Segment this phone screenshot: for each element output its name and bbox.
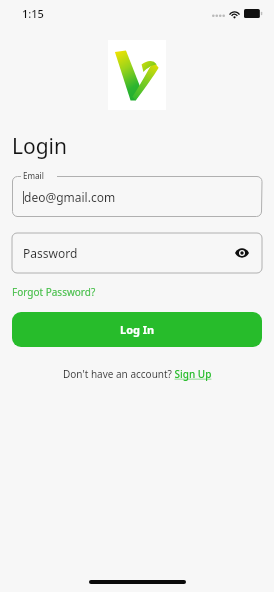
button[interactable]: Password: [12, 233, 262, 273]
staticText: Log In: [120, 322, 155, 337]
staticText: Email: [23, 170, 44, 181]
staticText: Login: [12, 132, 68, 161]
button[interactable]: Show password: [232, 243, 252, 263]
staticText: deo@gmail.com: [24, 189, 116, 205]
button[interactable]: Log In: [12, 312, 262, 347]
staticText: Password: [23, 245, 78, 261]
button[interactable]: Don't have an account? Sign Up: [63, 367, 212, 381]
staticText: Forgot Password?: [12, 285, 96, 299]
button[interactable]: deo@gmail.com: [12, 176, 262, 217]
staticText: 1:15: [22, 6, 44, 21]
button[interactable]: Forgot Password?: [12, 285, 96, 299]
staticText: Don't have an account? Sign Up: [63, 367, 212, 381]
